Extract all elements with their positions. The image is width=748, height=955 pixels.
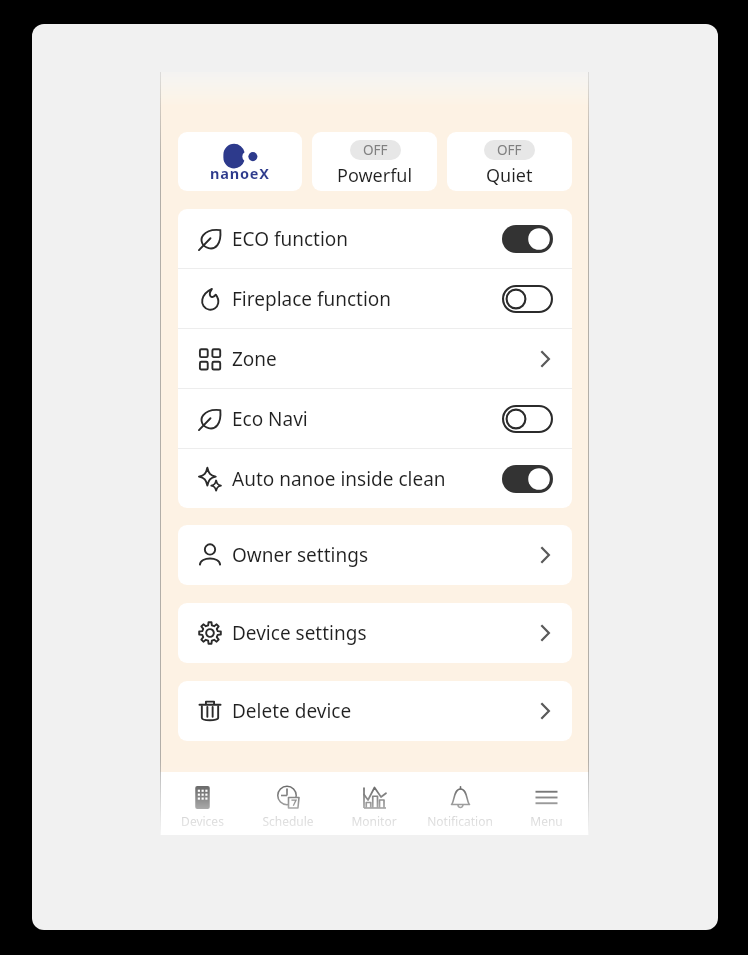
other: Off [502,405,553,433]
staticText: Monitor [351,813,397,829]
button[interactable]: Delete device [178,681,572,741]
staticText: Powerful [337,163,413,188]
button[interactable]: Auto nanoe inside clean [178,449,572,508]
staticText: Schedule [262,813,314,829]
button[interactable]: OFF [447,132,572,191]
button[interactable]: Menu [503,772,589,835]
staticText: Delete device [232,698,352,724]
button[interactable]: nanoe X [178,132,302,191]
staticText: Quiet [486,163,533,188]
staticText: ECO function [232,226,349,252]
staticText: Zone [232,346,277,372]
staticText: Auto nanoe inside clean [232,466,446,492]
staticText: Menu [530,813,563,829]
button[interactable]: Notification [417,772,503,835]
staticText: Eco Navi [232,406,308,432]
button[interactable]: ECO function [178,209,572,268]
staticText: nanoeX [210,163,270,183]
staticText: Owner settings [232,542,368,568]
button[interactable]: Schedule [245,772,331,835]
button[interactable]: OFF [312,132,437,191]
other: On [502,465,553,493]
other: Off [502,285,553,313]
staticText: Notification [427,813,493,829]
staticText: Device settings [232,620,367,646]
staticText: Devices [181,813,224,829]
button[interactable]: Monitor [331,772,417,835]
button[interactable]: Devices [160,772,245,835]
button[interactable]: Eco Navi [178,389,572,448]
staticText: Fireplace function [232,286,392,312]
staticText: OFF [363,141,388,159]
button[interactable]: Owner settings [178,525,572,585]
button[interactable]: Device settings [178,603,572,663]
other: On [502,225,553,253]
staticText: OFF [497,141,522,159]
button[interactable]: Zone [178,329,572,388]
button[interactable]: Fireplace function [178,269,572,328]
